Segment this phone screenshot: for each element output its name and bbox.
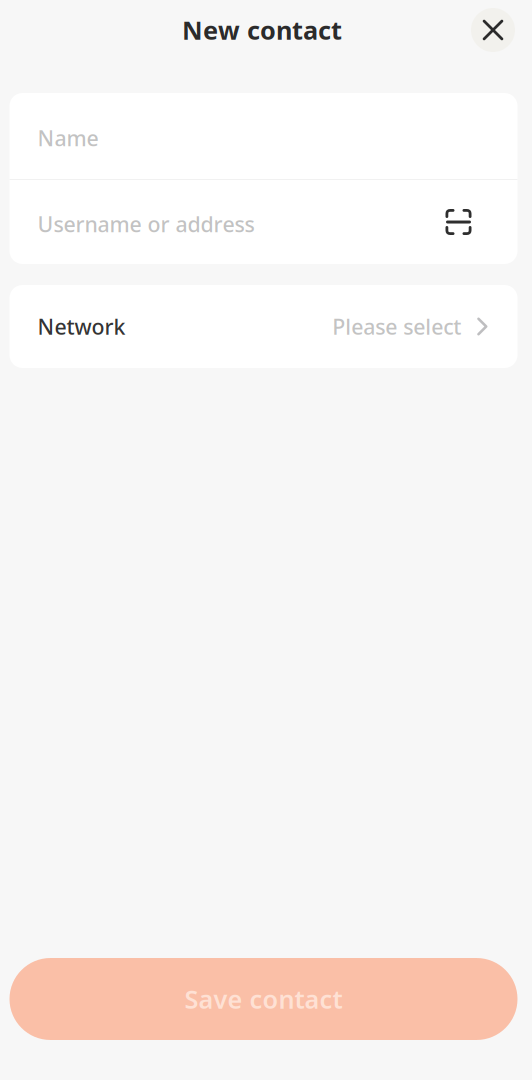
- button[interactable]: Close: [471, 8, 515, 52]
- staticText: Name: [37, 124, 98, 152]
- button[interactable]: Name: [9, 93, 517, 179]
- button[interactable]: Scan QR code: [435, 180, 489, 264]
- staticText: Please select: [332, 312, 461, 341]
- staticText: New contact: [182, 13, 342, 47]
- button[interactable]: Network: [9, 285, 517, 368]
- button[interactable]: Save contact: [9, 958, 517, 1040]
- staticText: Save contact: [184, 982, 342, 1016]
- staticText: Username or address: [37, 210, 254, 238]
- staticText: Network: [37, 312, 125, 341]
- button[interactable]: Username or address: [9, 180, 435, 264]
